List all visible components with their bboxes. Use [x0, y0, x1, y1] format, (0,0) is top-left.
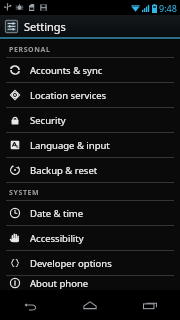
staticText: About phone	[30, 277, 89, 290]
staticText: 9:48	[159, 2, 177, 14]
button[interactable]: Back	[0, 290, 60, 320]
button[interactable]: Developer options	[0, 251, 180, 275]
button[interactable]: Recent apps	[120, 290, 180, 320]
staticText: PERSONAL	[9, 45, 51, 55]
button[interactable]: Settings title	[0, 15, 180, 37]
staticText: Security	[30, 114, 66, 127]
button[interactable]: Language & input	[0, 133, 180, 157]
staticText: Date & time	[30, 207, 84, 220]
staticText: SYSTEM	[9, 188, 40, 198]
button[interactable]: About phone	[0, 276, 180, 290]
staticText: Settings	[24, 19, 66, 34]
staticText: Developer options	[30, 257, 112, 270]
staticText: Accessibility	[30, 232, 84, 245]
button[interactable]: Location services	[0, 83, 180, 107]
staticText: Backup & reset	[30, 164, 98, 177]
button[interactable]: Accounts & sync	[0, 58, 180, 82]
staticText: Language & input	[30, 139, 110, 152]
staticText: Location services	[30, 89, 107, 102]
button[interactable]: Home	[60, 290, 120, 320]
button[interactable]: Backup & reset	[0, 158, 180, 182]
staticText: Accounts & sync	[30, 64, 103, 77]
button[interactable]: Accessibility	[0, 226, 180, 250]
button[interactable]: Security	[0, 108, 180, 132]
button[interactable]: Date & time	[0, 201, 180, 225]
